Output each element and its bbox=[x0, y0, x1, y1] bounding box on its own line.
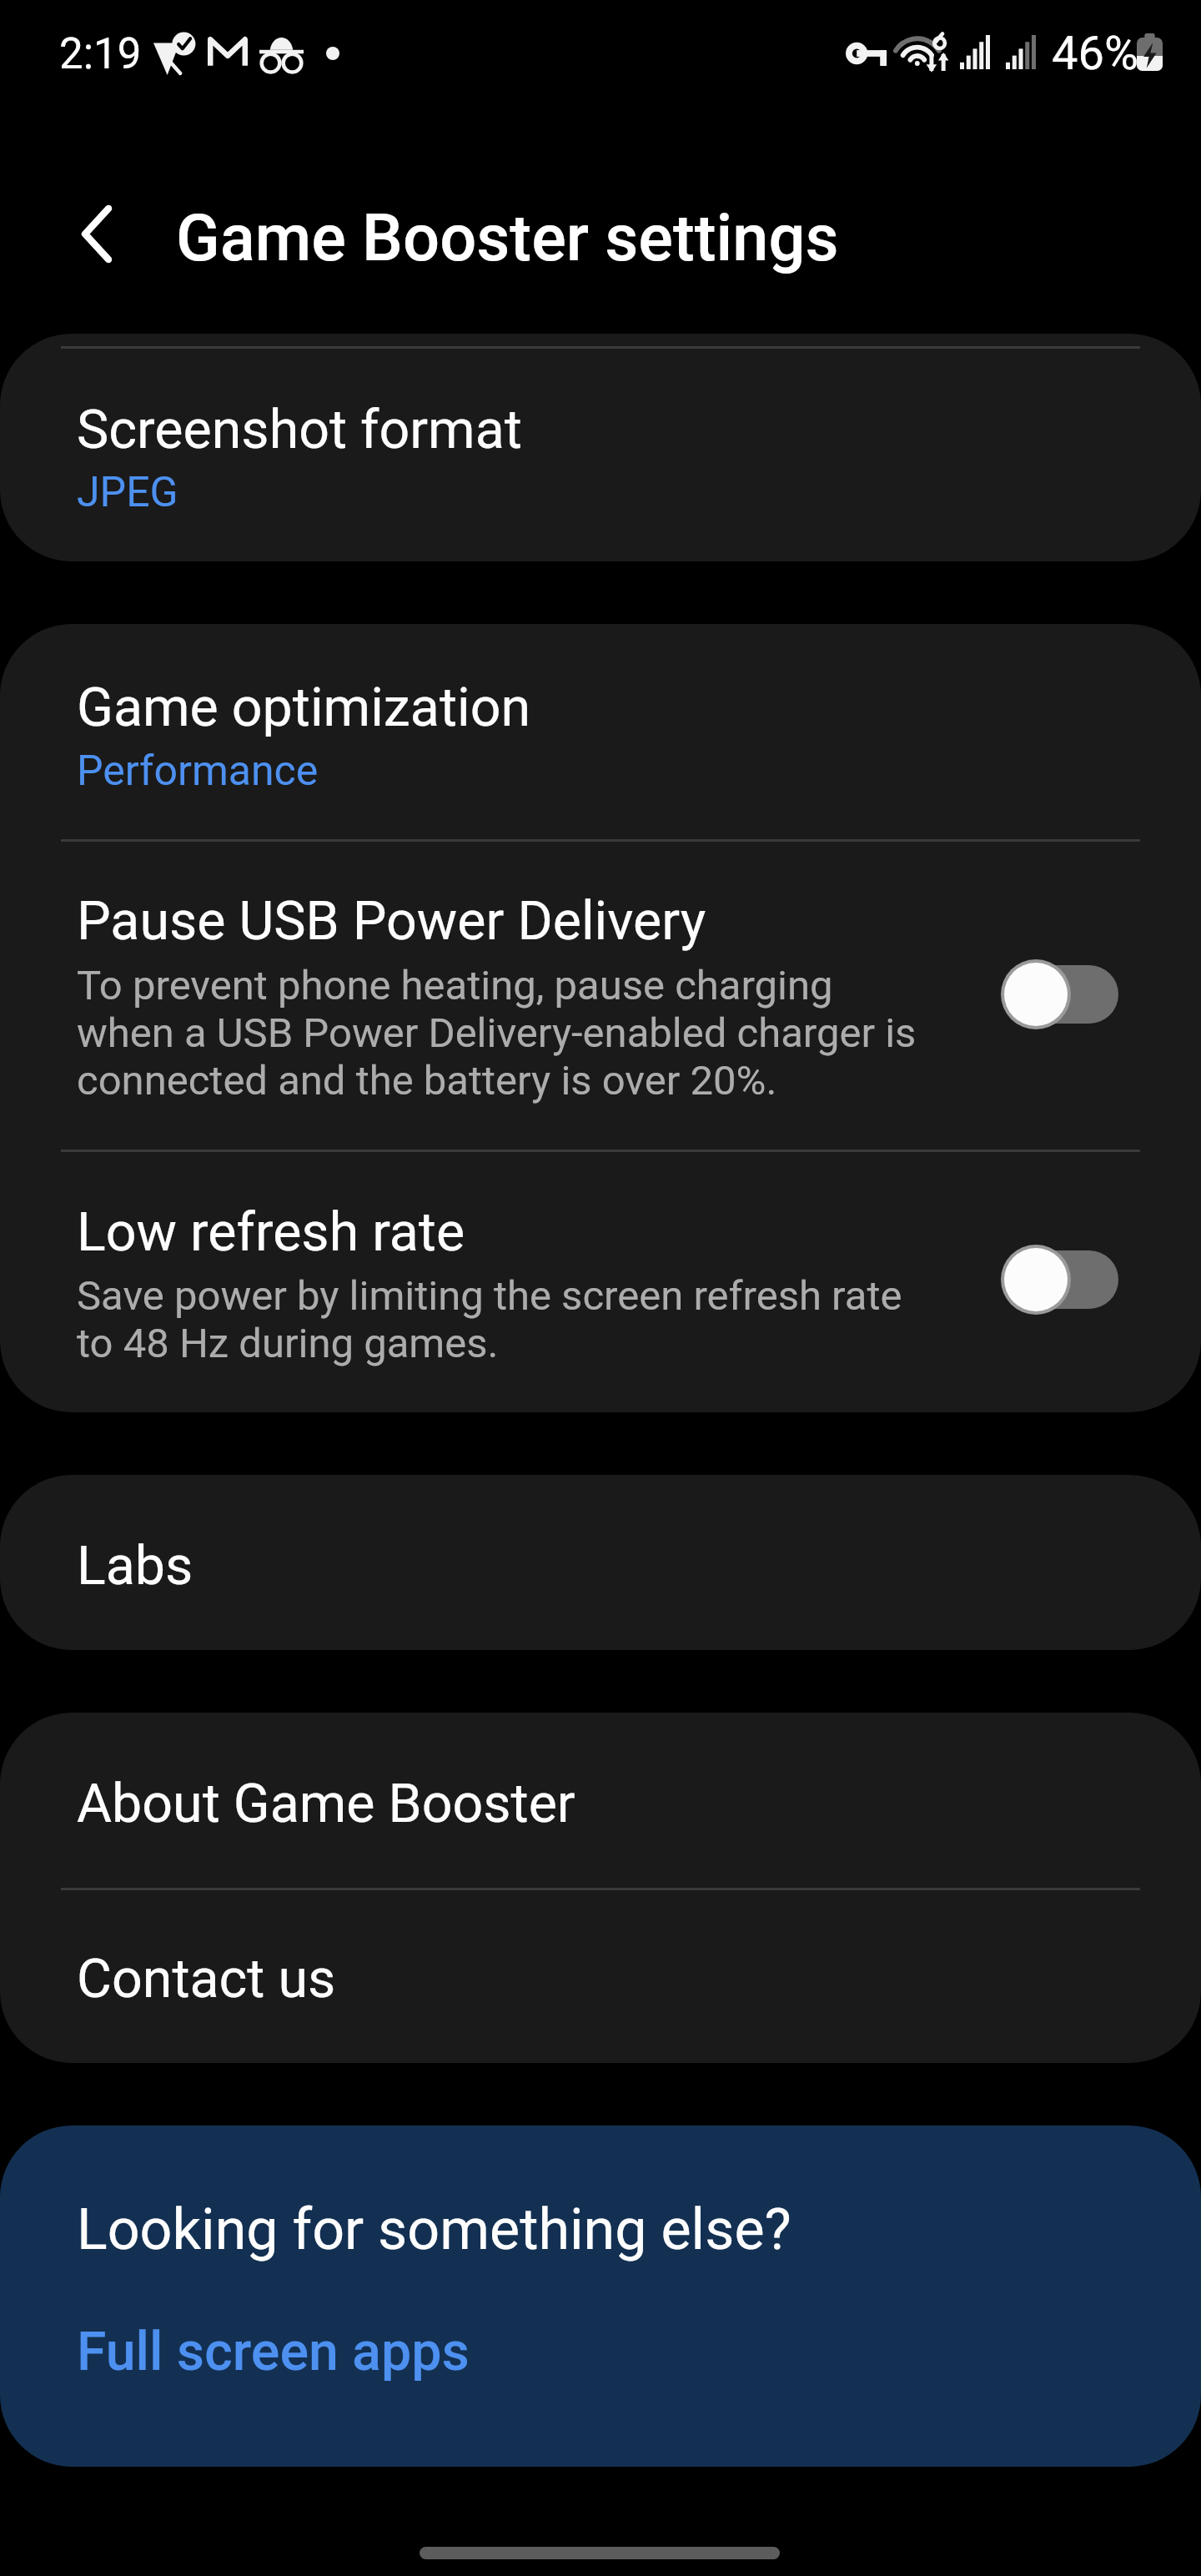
staticText: 46% bbox=[1052, 26, 1138, 81]
button[interactable]: Toggle, off bbox=[967, 1240, 1118, 1320]
staticText: JPEG bbox=[77, 468, 178, 517]
button[interactable]: Looking for something else? bbox=[0, 2126, 1201, 2467]
staticText: Performance bbox=[77, 747, 319, 796]
button[interactable]: Navigate up bbox=[40, 177, 153, 290]
staticText: Looking for something else? bbox=[77, 2196, 791, 2263]
button[interactable]: Pause USB Power Delivery bbox=[0, 839, 1201, 1150]
staticText: Game optimization bbox=[77, 676, 531, 739]
staticText: Contact us bbox=[77, 1947, 336, 2010]
staticText: Full screen apps bbox=[77, 2320, 470, 2383]
button[interactable]: Toggle, off bbox=[967, 954, 1118, 1034]
staticText: Low refresh rate bbox=[77, 1200, 465, 1264]
button[interactable]: Labs bbox=[0, 1475, 1201, 1650]
button[interactable]: Game optimization bbox=[0, 624, 1201, 839]
staticText: About Game Booster bbox=[77, 1772, 575, 1835]
staticText: Labs bbox=[77, 1534, 193, 1597]
button[interactable]: Screenshot format bbox=[0, 334, 1201, 561]
button[interactable]: About Game Booster bbox=[0, 1713, 1201, 1888]
staticText: To prevent phone heating, pause charging… bbox=[77, 961, 917, 1104]
button[interactable]: Contact us bbox=[0, 1888, 1201, 2063]
button[interactable]: Low refresh rate bbox=[0, 1150, 1201, 1412]
staticText: Screenshot format bbox=[77, 398, 522, 461]
staticText: Save power by limiting the screen refres… bbox=[77, 1271, 902, 1366]
staticText: Game Booster settings bbox=[176, 200, 839, 276]
staticText: 2:19 bbox=[59, 29, 142, 79]
staticText: Pause USB Power Delivery bbox=[77, 889, 706, 953]
